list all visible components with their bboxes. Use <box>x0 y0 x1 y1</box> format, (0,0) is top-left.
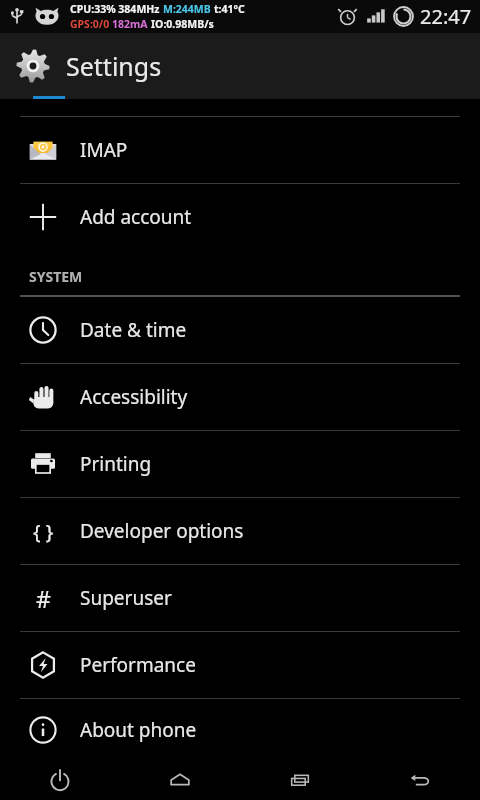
staticText: GPS:0/0 <box>70 17 112 31</box>
button[interactable]: Date & time <box>0 297 480 363</box>
staticText: Add account <box>80 204 192 230</box>
staticText: SYSTEM <box>29 267 83 286</box>
button[interactable]: { } <box>0 498 480 564</box>
staticText: About phone <box>80 717 197 743</box>
button[interactable]: Add account <box>0 184 480 250</box>
staticText: Developer options <box>80 518 244 544</box>
staticText: Printing <box>80 451 152 477</box>
staticText: Performance <box>80 652 196 678</box>
button[interactable]: IMAP <box>0 117 480 183</box>
button[interactable]: Printing <box>0 431 480 497</box>
staticText: Date & time <box>80 317 187 343</box>
staticText: { } <box>33 518 54 545</box>
staticText: Settings <box>66 49 162 83</box>
staticText: 182mA <box>112 17 151 31</box>
staticText: IO:0.98MB/s <box>151 17 214 31</box>
staticText: # <box>36 583 51 613</box>
button[interactable]: About phone <box>0 699 480 760</box>
button[interactable]: Recents <box>240 760 360 800</box>
staticText: 22:47 <box>420 3 472 30</box>
staticText: t:41°C <box>214 2 245 16</box>
staticText: CPU:33% 384MHz <box>70 2 163 16</box>
other: Settings <box>15 48 51 84</box>
button[interactable]: Performance <box>0 632 480 698</box>
button[interactable]: Back <box>360 760 480 800</box>
staticText: Superuser <box>80 585 172 611</box>
staticText: Accessibility <box>80 384 188 410</box>
button[interactable]: Home <box>120 760 240 800</box>
button[interactable]: # <box>0 565 480 631</box>
button[interactable]: Power <box>0 760 120 800</box>
staticText: IMAP <box>80 137 128 163</box>
button[interactable]: Accessibility <box>0 364 480 430</box>
staticText: M:244MB <box>163 2 214 16</box>
